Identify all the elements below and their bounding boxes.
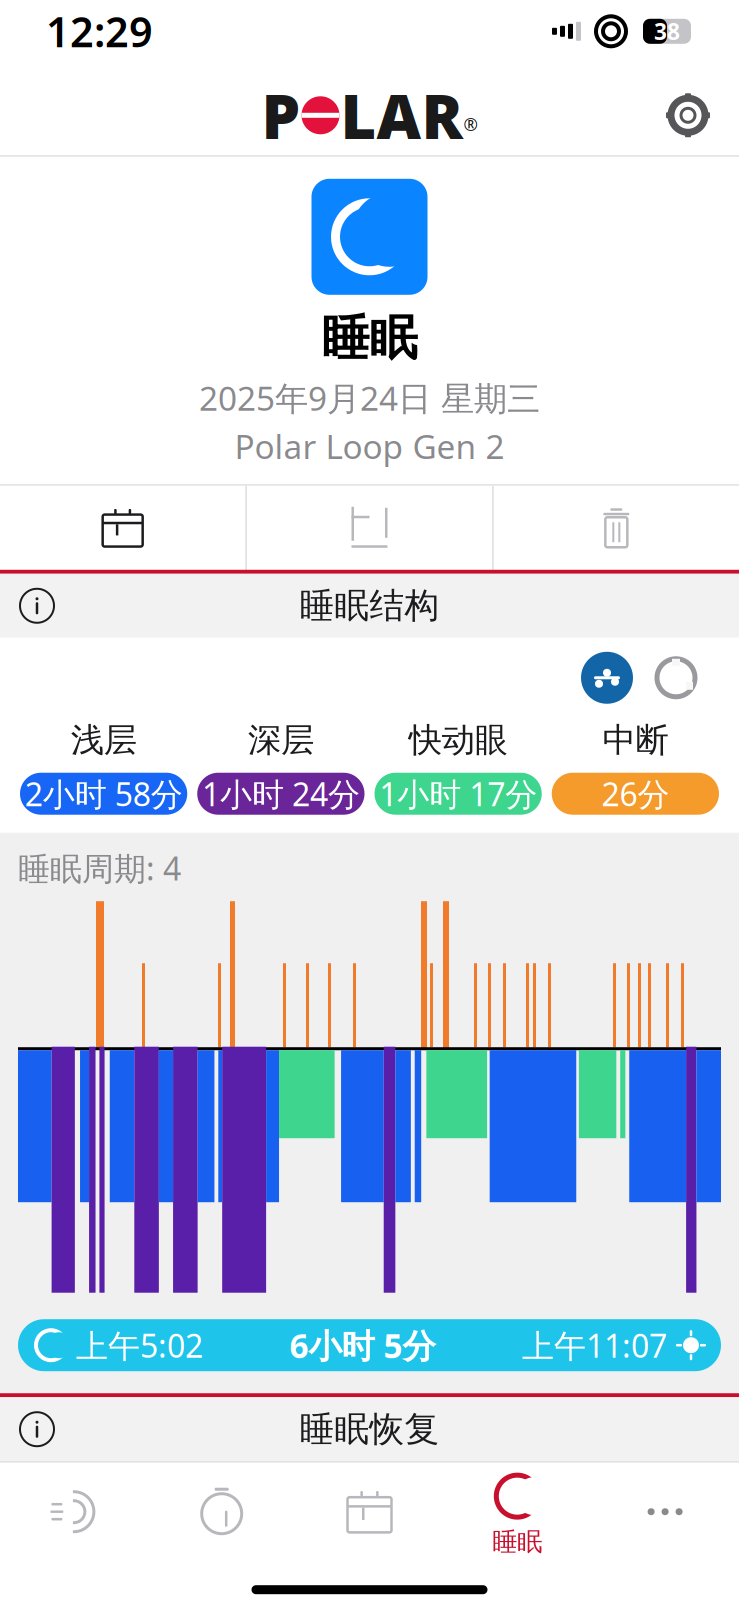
staticText: 快动眼 — [409, 720, 508, 761]
button[interactable]: Ring view — [633, 657, 697, 699]
staticText: 2小时 58分 — [25, 772, 183, 815]
staticText: 中断 — [602, 720, 668, 761]
staticText: 1小时 17分 — [379, 772, 537, 815]
staticText: 睡眠结构 — [299, 584, 439, 627]
button[interactable]: Hypnogram view — [581, 652, 633, 704]
staticText: ® — [463, 113, 477, 136]
staticText: 上午5:02 — [76, 1324, 203, 1366]
button[interactable]: 睡眠恢复 — [0, 1393, 739, 1461]
staticText: 38 — [654, 16, 680, 46]
staticText: 睡眠 — [321, 309, 417, 368]
button[interactable]: Training — [148, 1467, 296, 1563]
staticText: 睡眠恢复 — [299, 1408, 439, 1450]
button[interactable]: Diary — [296, 1467, 443, 1563]
staticText: 2025年9月24日 星期三 — [199, 376, 540, 420]
staticText: 睡眠周期: 4 — [18, 847, 181, 889]
button[interactable]: 睡眠结构 — [0, 570, 739, 638]
staticText: 6小时 5分 — [289, 1323, 435, 1367]
staticText: Polar Loop Gen 2 — [234, 424, 504, 468]
button[interactable]: Crop — [247, 486, 492, 570]
staticText: 睡眠 — [492, 1526, 542, 1557]
staticText: 1小时 24分 — [202, 772, 360, 815]
button[interactable]: Calendar — [0, 486, 245, 570]
staticText: P — [261, 75, 300, 156]
staticText: 26分 — [601, 772, 669, 815]
button[interactable]: More — [591, 1467, 739, 1563]
button[interactable]: Activity — [0, 1467, 148, 1563]
staticText: 12:29 — [46, 4, 153, 59]
staticText: 深层 — [248, 720, 314, 761]
staticText: 浅层 — [71, 720, 137, 761]
staticText: LAR — [340, 75, 463, 156]
button[interactable]: Settings — [665, 92, 739, 138]
staticText: 上午11:07 — [522, 1324, 667, 1366]
button[interactable]: Delete — [494, 486, 739, 570]
button[interactable]: Sleep — [443, 1467, 591, 1563]
